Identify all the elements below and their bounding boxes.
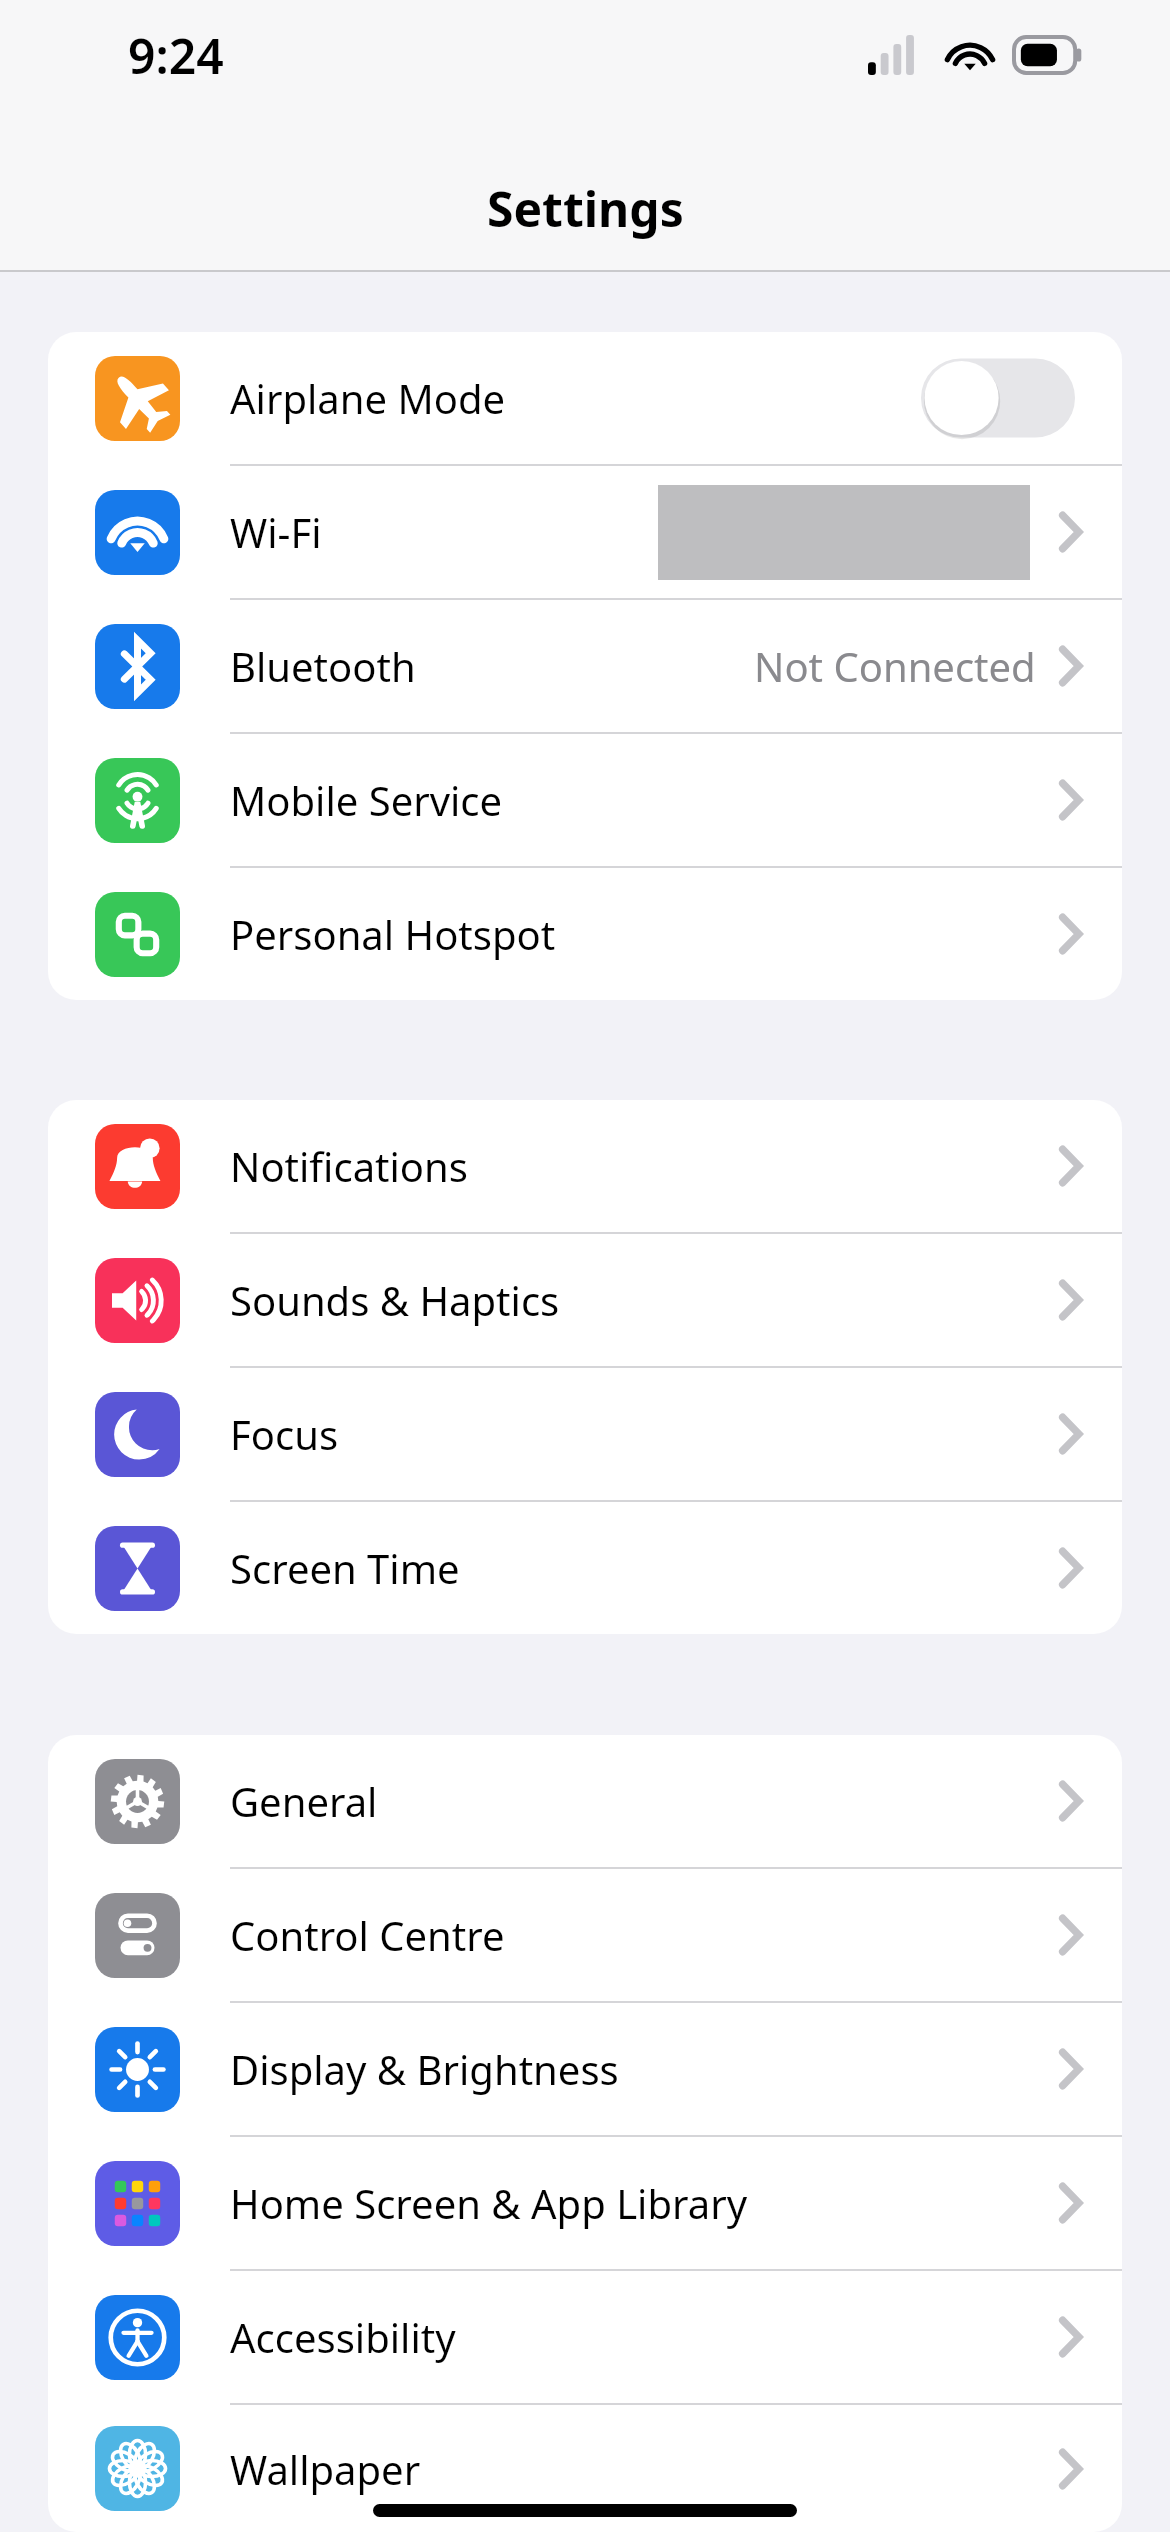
staticText: Focus [230,1407,1058,1461]
staticText: Home Screen & App Library [230,2176,1058,2230]
staticText: Wi-Fi [230,505,658,559]
staticText: Screen Time [230,1541,1058,1595]
button[interactable]: Mobile Service [48,734,1122,866]
button[interactable]: Airplane Mode [48,332,1122,464]
button[interactable]: Accessibility [48,2271,1122,2403]
button[interactable]: Screen Time [48,1502,1122,1634]
staticText: Mobile Service [230,773,1058,827]
button[interactable]: Sounds & Haptics [48,1234,1122,1366]
staticText: Not Connected [754,639,1036,693]
staticText: Accessibility [230,2310,1058,2364]
staticText: Sounds & Haptics [230,1273,1058,1327]
button[interactable]: Control Centre [48,1869,1122,2001]
staticText: Settings [487,176,684,241]
staticText: 9:24 [128,23,224,88]
button[interactable]: Wi-Fi [48,466,1122,598]
staticText: Control Centre [230,1908,1058,1962]
staticText: Bluetooth [230,639,754,693]
button[interactable]: Bluetooth [48,600,1122,732]
staticText: Notifications [230,1139,1058,1193]
button[interactable]: Home Screen & App Library [48,2137,1122,2269]
button[interactable]: General [48,1735,1122,1867]
staticText: General [230,1774,1058,1828]
button[interactable]: Display & Brightness [48,2003,1122,2135]
button[interactable]: Airplane Mode toggle [921,352,1075,444]
staticText: Display & Brightness [230,2042,1058,2096]
button[interactable]: Notifications [48,1100,1122,1232]
button[interactable]: Focus [48,1368,1122,1500]
staticText: Airplane Mode [230,371,921,425]
button[interactable]: Personal Hotspot [48,868,1122,1000]
staticText: Personal Hotspot [230,907,1058,961]
staticText: Wallpaper [230,2442,1058,2496]
button[interactable]: Wallpaper [48,2405,1122,2532]
